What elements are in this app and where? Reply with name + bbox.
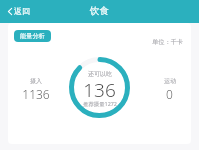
staticText: 单位：千卡 [152,38,183,46]
button[interactable]: 返回 [0,2,36,20]
staticText: 0 [166,86,173,102]
staticText: 推荐摄量1272 [83,100,117,107]
staticText: 饮食 [90,5,109,17]
staticText: 还可以吃 [88,70,112,78]
staticText: 返回 [14,6,30,16]
staticText: 摄入 [30,77,42,85]
button[interactable]: 能量分析 [14,30,51,42]
staticText: 1136 [22,86,50,102]
staticText: 能量分析 [20,32,45,40]
staticText: 运动 [164,77,176,85]
staticText: 136 [83,77,116,103]
